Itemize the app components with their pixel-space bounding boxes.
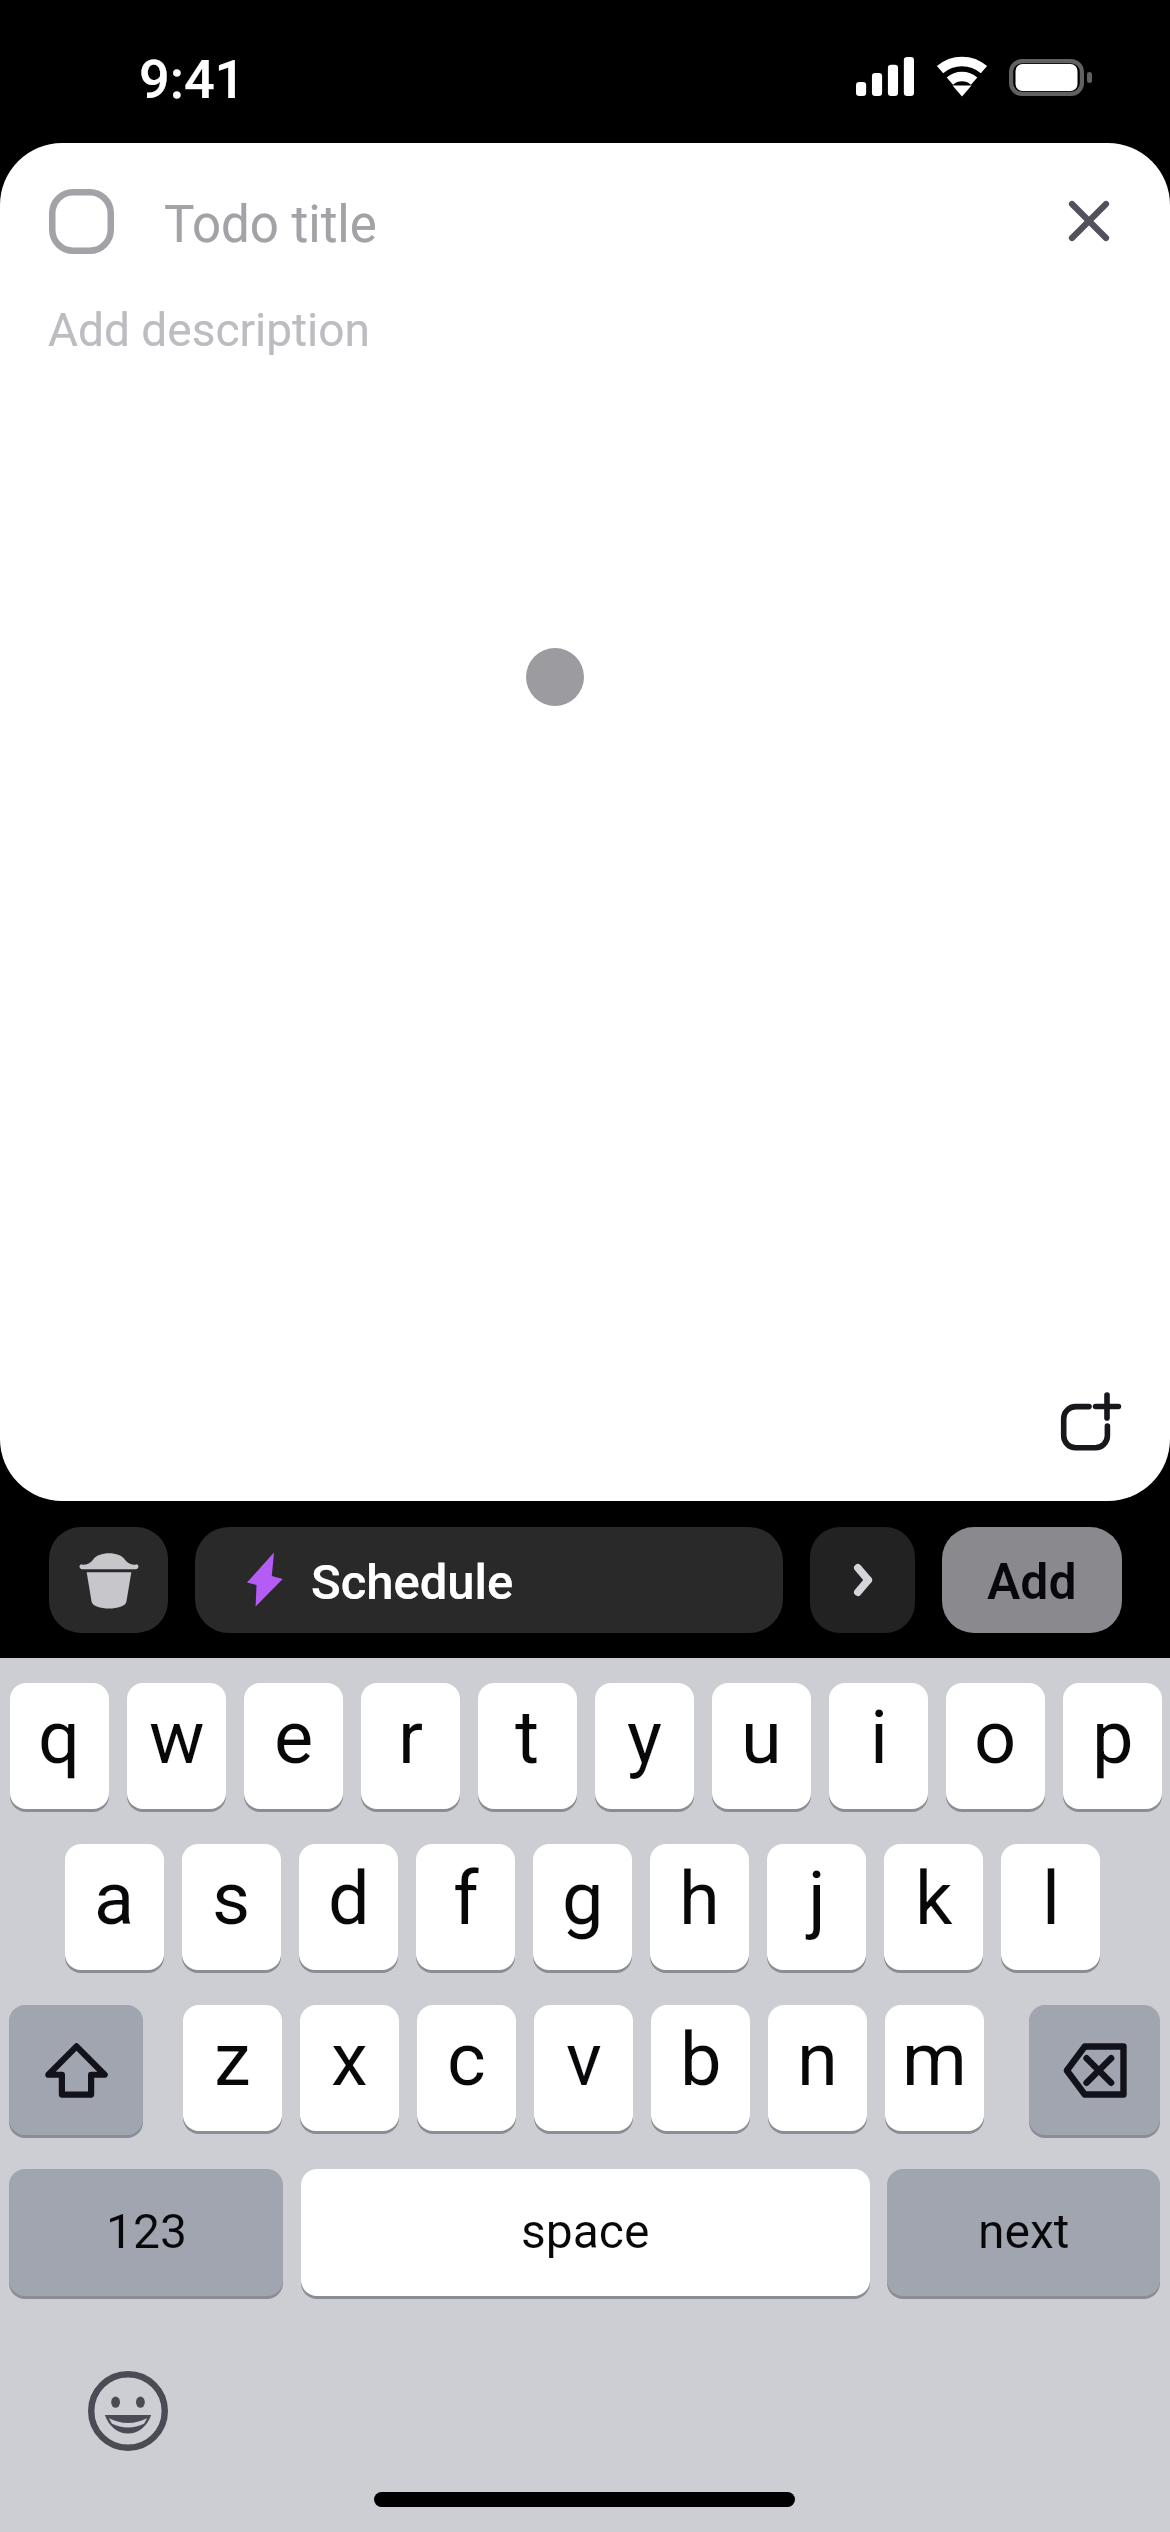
staticText: Add: [987, 1553, 1077, 1612]
button[interactable]: j: [767, 1844, 866, 1970]
button[interactable]: i: [829, 1683, 928, 1809]
staticText: n: [797, 2016, 838, 2103]
button[interactable]: o: [946, 1683, 1045, 1809]
staticText: f: [453, 1855, 479, 1942]
button[interactable]: Add subtask: [1030, 1359, 1152, 1477]
button[interactable]: Schedule: [195, 1527, 783, 1633]
staticText: next: [978, 2203, 1070, 2259]
staticText: z: [214, 2016, 251, 2103]
button[interactable]: a: [65, 1844, 164, 1970]
button[interactable]: d: [299, 1844, 398, 1970]
button[interactable]: m: [885, 2005, 984, 2131]
staticText: h: [679, 1855, 720, 1942]
staticText: l: [1042, 1855, 1060, 1942]
button[interactable]: f: [416, 1844, 515, 1970]
staticText: v: [566, 2016, 602, 2103]
staticText: space: [521, 2203, 650, 2259]
button[interactable]: Mark complete: [49, 189, 114, 254]
button[interactable]: 123: [9, 2169, 283, 2296]
staticText: c: [447, 2016, 486, 2103]
button[interactable]: Shift: [9, 2005, 143, 2135]
staticText: Add description: [48, 303, 370, 357]
staticText: s: [212, 1855, 251, 1942]
staticText: 123: [106, 2203, 187, 2259]
button[interactable]: Close: [1043, 175, 1135, 267]
button[interactable]: Add: [942, 1527, 1122, 1633]
button[interactable]: r: [361, 1683, 460, 1809]
staticText: m: [902, 2016, 967, 2103]
staticText: i: [870, 1694, 888, 1781]
button[interactable]: k: [884, 1844, 983, 1970]
button[interactable]: b: [651, 2005, 750, 2131]
button[interactable]: n: [768, 2005, 867, 2131]
staticText: r: [398, 1694, 424, 1781]
button[interactable]: u: [712, 1683, 811, 1809]
staticText: e: [274, 1694, 314, 1781]
button[interactable]: next: [887, 2169, 1160, 2296]
staticText: 9:41: [139, 48, 246, 111]
button[interactable]: Delete: [49, 1527, 168, 1633]
staticText: g: [562, 1855, 604, 1942]
button[interactable]: l: [1001, 1844, 1100, 1970]
staticText: y: [627, 1694, 663, 1781]
button[interactable]: More options: [810, 1527, 915, 1633]
button[interactable]: c: [417, 2005, 516, 2131]
staticText: t: [515, 1694, 540, 1781]
button[interactable]: h: [650, 1844, 749, 1970]
staticText: j: [808, 1855, 826, 1942]
button[interactable]: s: [182, 1844, 281, 1970]
button[interactable]: t: [478, 1683, 577, 1809]
button[interactable]: Backspace: [1029, 2005, 1160, 2135]
staticText: q: [38, 1694, 81, 1781]
staticText: k: [915, 1855, 953, 1942]
button[interactable]: z: [183, 2005, 282, 2131]
button[interactable]: e: [244, 1683, 343, 1809]
staticText: u: [741, 1694, 782, 1781]
button[interactable]: x: [300, 2005, 399, 2131]
staticText: w: [149, 1694, 205, 1781]
button[interactable]: p: [1063, 1683, 1162, 1809]
button[interactable]: v: [534, 2005, 633, 2131]
staticText: d: [328, 1855, 370, 1942]
button[interactable]: g: [533, 1844, 632, 1970]
staticText: b: [680, 2016, 722, 2103]
staticText: Todo title: [164, 195, 377, 255]
button[interactable]: y: [595, 1683, 694, 1809]
staticText: x: [331, 2016, 368, 2103]
button[interactable]: q: [10, 1683, 109, 1809]
staticText: Schedule: [311, 1554, 514, 1611]
button[interactable]: space: [301, 2169, 870, 2296]
staticText: a: [94, 1855, 135, 1942]
staticText: o: [974, 1694, 1017, 1781]
button[interactable]: w: [127, 1683, 226, 1809]
button[interactable]: Emoji: [76, 2359, 180, 2463]
staticText: p: [1092, 1694, 1134, 1781]
